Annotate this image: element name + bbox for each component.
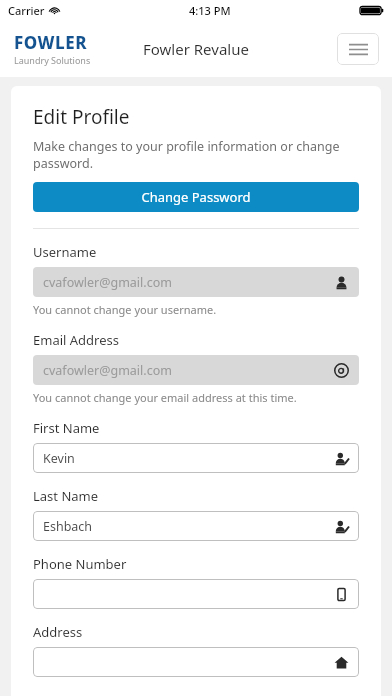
staticText: cvafowler@gmail.com (43, 362, 172, 379)
staticText: Carrier (8, 3, 45, 18)
staticText: Address (33, 623, 83, 641)
staticText: Phone Number (33, 555, 127, 573)
button[interactable] (33, 579, 359, 609)
staticText: Make changes to your profile information… (33, 138, 359, 172)
staticText: cvafowler@gmail.com (43, 274, 172, 291)
staticText: Email Address (33, 331, 119, 349)
staticText: Edit Profile (33, 104, 130, 130)
staticText: You cannot change your email address at … (33, 390, 297, 405)
staticText: Eshbach (43, 518, 93, 535)
staticText: Laundry Solutions (14, 54, 91, 66)
staticText: Change Password (141, 188, 251, 206)
button[interactable] (33, 647, 359, 677)
staticText: You cannot change your username. (33, 302, 217, 317)
staticText: FOWLER (14, 31, 88, 54)
staticText: Fowler Revalue (143, 39, 249, 59)
staticText: Username (33, 243, 97, 261)
staticText: Last Name (33, 487, 99, 505)
staticText: First Name (33, 419, 100, 437)
button[interactable]: cvafowler@gmail.com (33, 355, 359, 385)
button[interactable]: Change Password (33, 182, 359, 212)
button[interactable]: cvafowler@gmail.com (33, 267, 359, 297)
button[interactable]: Eshbach (33, 511, 359, 541)
button[interactable]: Menu (337, 33, 379, 65)
button[interactable]: Kevin (33, 443, 359, 473)
staticText: 4:13 PM (189, 3, 231, 18)
staticText: Kevin (43, 450, 75, 467)
